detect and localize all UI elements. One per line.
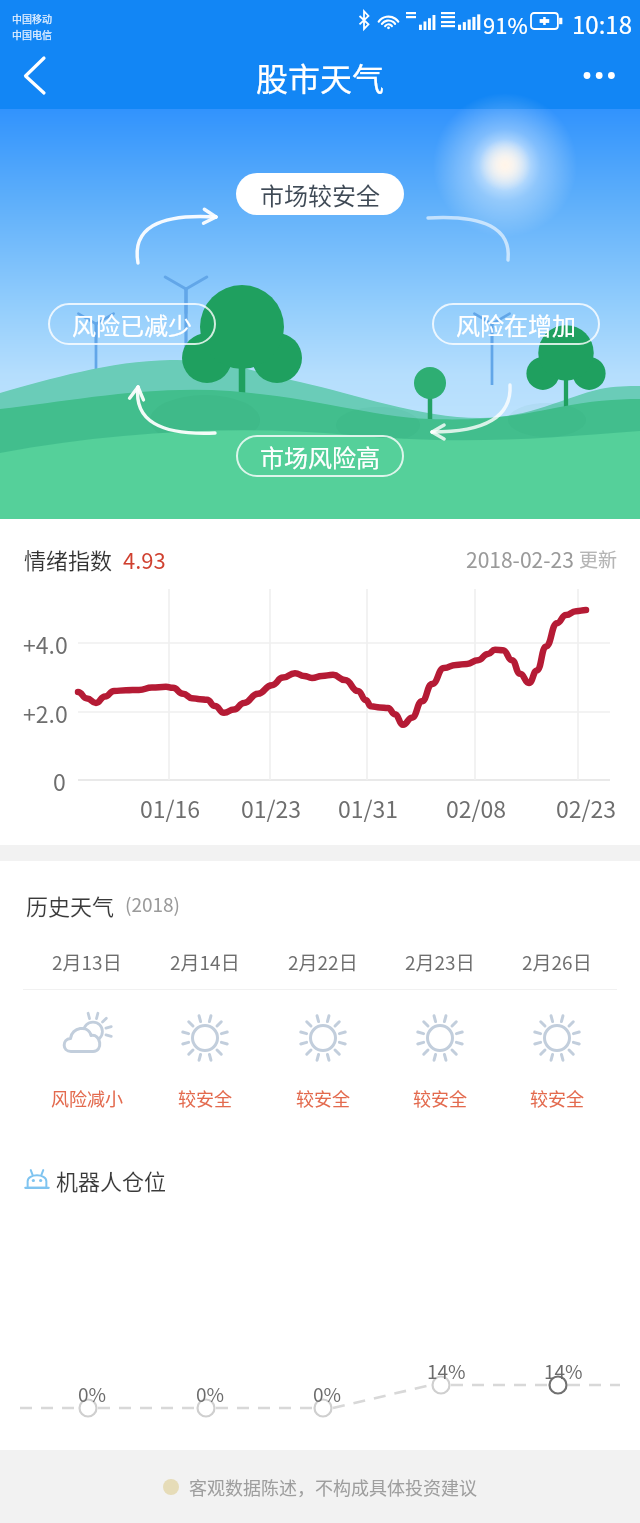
- staticText: 更新: [579, 545, 618, 573]
- staticText: 较安全: [413, 1085, 467, 1111]
- staticText: 机器人仓位: [56, 1164, 167, 1196]
- button[interactable]: 市场风险高: [236, 435, 404, 477]
- staticText: 客观数据陈述，不构成具体投资建议: [189, 1474, 477, 1500]
- button[interactable]: 市场较安全: [236, 173, 404, 215]
- staticText: 14%: [427, 1357, 466, 1385]
- staticText: 中国移动: [12, 11, 52, 25]
- staticText: 风险减小: [51, 1085, 123, 1111]
- staticText: 中国电信: [12, 27, 52, 41]
- staticText: 0%: [313, 1380, 342, 1408]
- staticText: 情绪指数: [24, 543, 113, 575]
- staticText: 2月26日: [522, 948, 592, 976]
- button[interactable]: Back: [0, 53, 56, 109]
- staticText: +2.0: [23, 696, 68, 729]
- button[interactable]: 风险已减少: [48, 303, 216, 345]
- staticText: 历史天气: [26, 889, 115, 921]
- staticText: 0: [53, 764, 66, 797]
- staticText: 4.93: [123, 543, 166, 575]
- staticText: 91%: [483, 8, 528, 40]
- staticText: 风险在增加: [456, 307, 576, 342]
- staticText: 风险已减少: [72, 307, 192, 342]
- staticText: 0%: [78, 1380, 107, 1408]
- staticText: 02/08: [446, 791, 507, 824]
- staticText: 10:18: [572, 6, 632, 41]
- staticText: 01/31: [338, 791, 399, 824]
- staticText: 01/16: [140, 791, 201, 824]
- staticText: 较安全: [296, 1085, 350, 1111]
- staticText: 市场较安全: [260, 177, 380, 212]
- staticText: +4.0: [23, 627, 68, 660]
- staticText: 市场风险高: [260, 439, 380, 474]
- staticText: 较安全: [530, 1085, 584, 1111]
- staticText: 2月13日: [52, 948, 122, 976]
- button[interactable]: More options: [584, 53, 640, 109]
- staticText: 2月14日: [170, 948, 240, 976]
- staticText: (2018): [125, 890, 181, 918]
- staticText: 较安全: [178, 1085, 232, 1111]
- staticText: 2月22日: [288, 948, 358, 976]
- staticText: 01/23: [241, 791, 302, 824]
- button[interactable]: 风险在增加: [432, 303, 600, 345]
- staticText: 14%: [544, 1357, 583, 1385]
- staticText: 02/23: [556, 791, 617, 824]
- staticText: 0%: [196, 1380, 225, 1408]
- staticText: 2月23日: [405, 948, 475, 976]
- staticText: 2018-02-23: [466, 544, 574, 574]
- staticText: 股市天气: [256, 54, 385, 100]
